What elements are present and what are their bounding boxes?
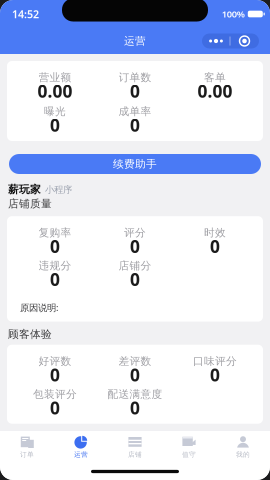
staticText: 0 <box>130 363 140 386</box>
staticText: 包装评分 <box>33 388 77 401</box>
staticText: 成单率 <box>118 105 151 118</box>
staticText: 0.00 <box>37 79 72 102</box>
staticText: 原因说明: <box>20 301 59 314</box>
staticText: 订单 <box>20 450 34 459</box>
staticText: 复购率 <box>38 226 71 239</box>
staticText: 14:52 <box>12 7 39 21</box>
staticText: 0 <box>210 235 220 258</box>
staticText: 运营 <box>124 34 146 47</box>
staticText: 营业额 <box>38 71 71 84</box>
button[interactable]: 值守 <box>162 432 216 462</box>
staticText: 0 <box>50 396 60 419</box>
button[interactable]: 我的 <box>216 432 270 462</box>
staticText: 0 <box>50 113 60 136</box>
staticText: 差评数 <box>118 355 151 368</box>
staticText: 店铺质量 <box>8 197 52 210</box>
button[interactable]: 运营 <box>54 432 108 462</box>
button[interactable]: 续费助手 <box>9 154 261 174</box>
staticText: 薪玩家 <box>8 183 41 196</box>
staticText: 我的 <box>236 450 250 459</box>
staticText: 时效 <box>204 226 226 239</box>
staticText: 曝光 <box>44 105 66 118</box>
staticText: 顾客体验 <box>8 328 52 341</box>
button[interactable]: 店铺 <box>108 432 162 462</box>
staticText: 续费助手 <box>113 157 157 170</box>
staticText: 0 <box>210 363 220 386</box>
staticText: 0 <box>50 235 60 258</box>
staticText: 店铺 <box>128 450 142 459</box>
staticText: 口味评分 <box>193 355 237 368</box>
staticText: 小程序 <box>45 184 72 195</box>
staticText: 0 <box>130 396 140 419</box>
staticText: 0 <box>130 235 140 258</box>
staticText: 0 <box>130 268 140 291</box>
staticText: 订单数 <box>118 71 151 84</box>
staticText: 客单 <box>204 71 226 84</box>
button[interactable]: More <box>202 33 259 48</box>
button[interactable]: 订单 <box>0 432 54 462</box>
staticText: 0 <box>130 79 140 102</box>
staticText: 0 <box>50 363 60 386</box>
staticText: 评分 <box>124 226 146 239</box>
staticText: 100% <box>222 8 245 20</box>
staticText: 配送满意度 <box>107 388 162 401</box>
staticText: 运营 <box>74 450 88 459</box>
staticText: 0.00 <box>197 79 232 102</box>
staticText: 0 <box>130 113 140 136</box>
staticText: 值守 <box>182 450 196 459</box>
staticText: 违规分 <box>38 259 71 272</box>
staticText: 店铺分 <box>118 259 151 272</box>
staticText: 好评数 <box>38 355 71 368</box>
staticText: 0 <box>50 268 60 291</box>
